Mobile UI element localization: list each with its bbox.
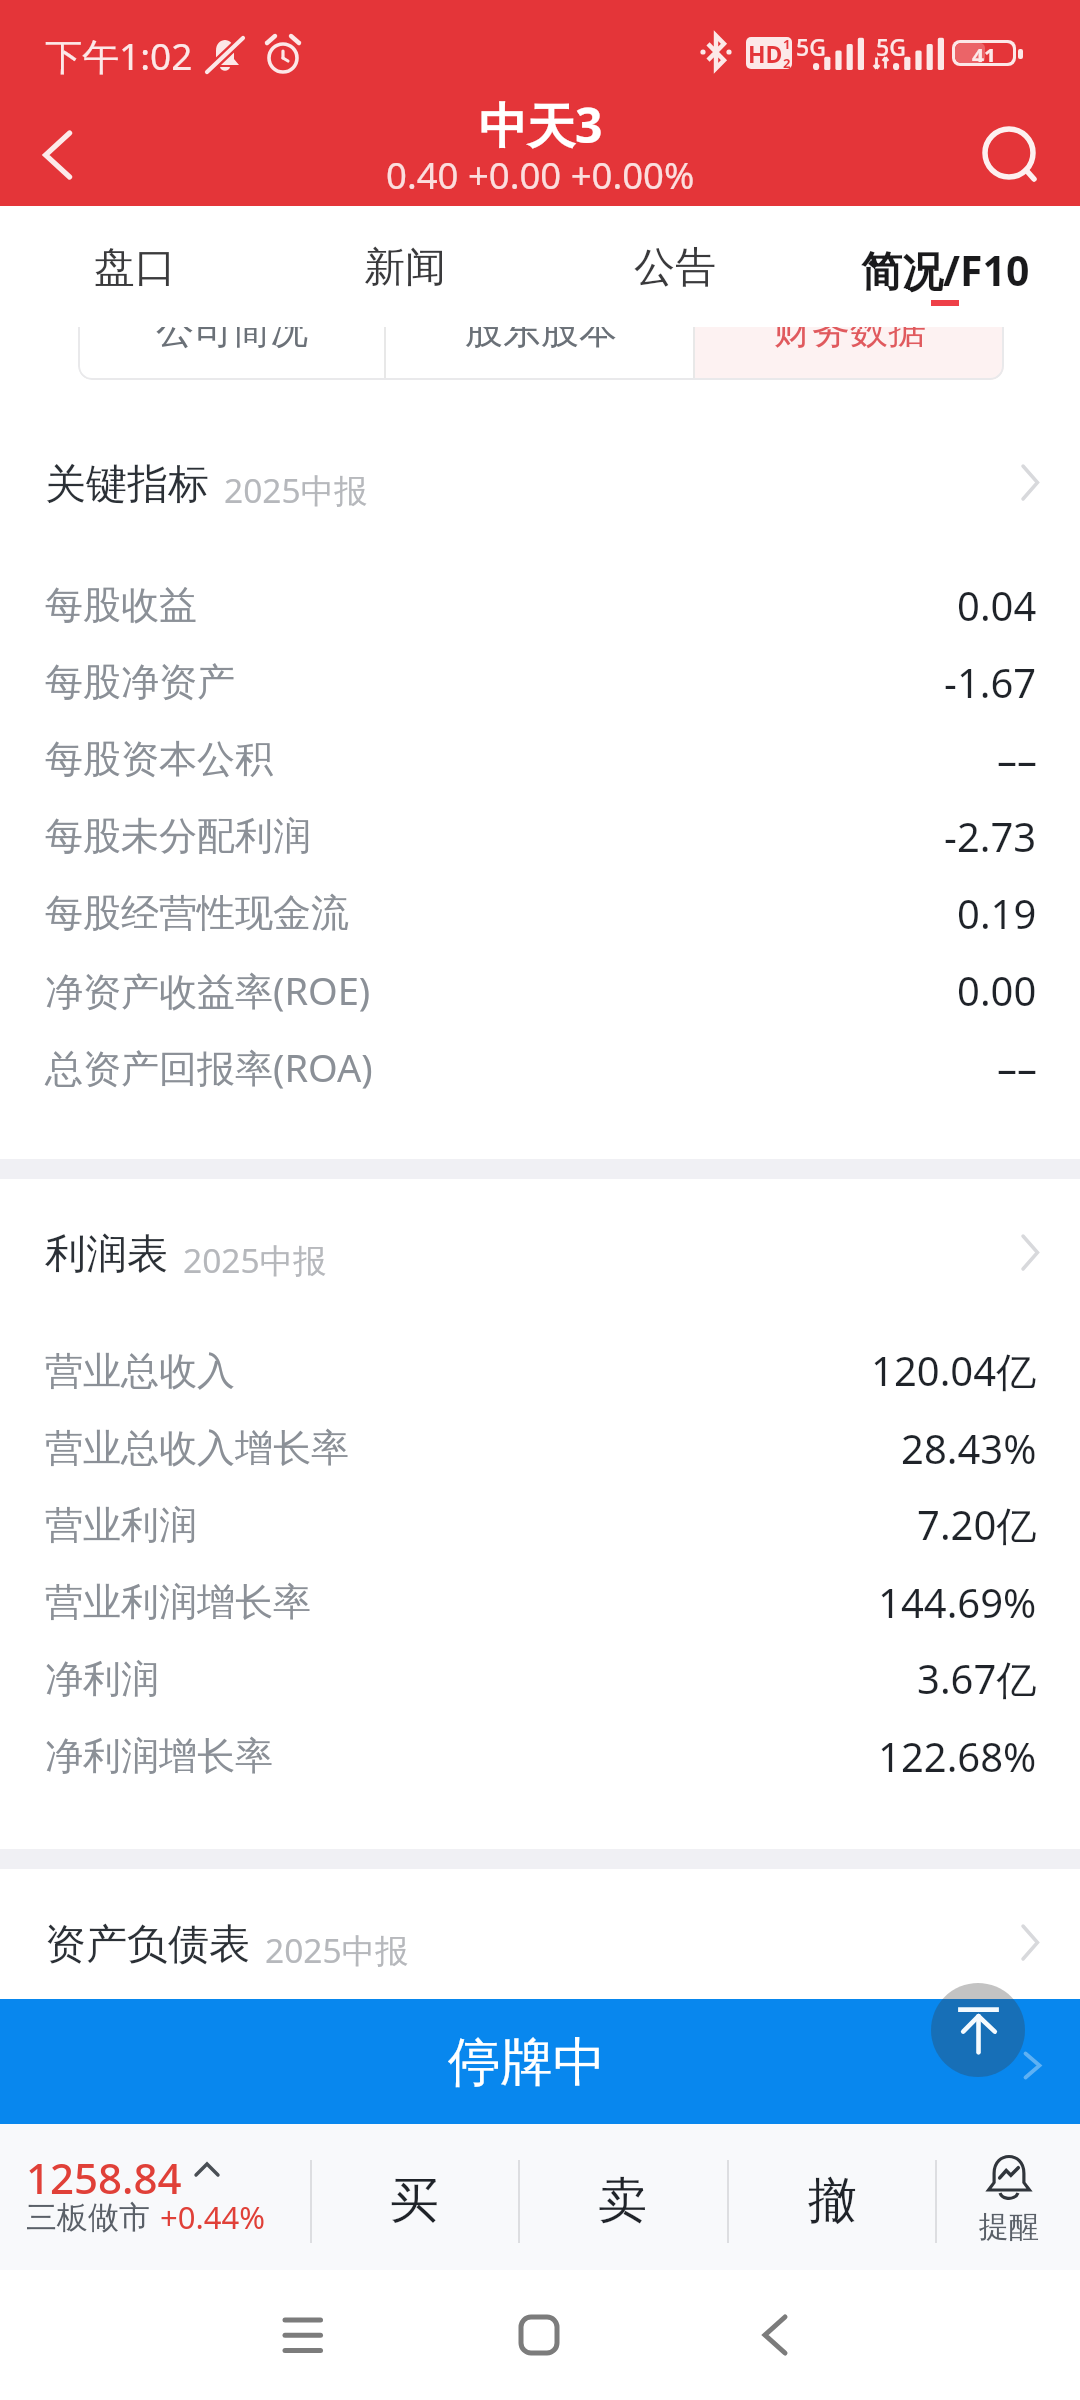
staticText: 三板做市 xyxy=(26,2198,150,2237)
staticText: 净利润增长率 xyxy=(45,1732,273,1780)
button[interactable]: Back xyxy=(736,2300,814,2370)
staticText: 3.67亿 xyxy=(917,1651,1037,1706)
staticText: 5G xyxy=(796,31,826,62)
staticText: 120.04亿 xyxy=(871,1343,1037,1398)
staticText: 1 xyxy=(783,37,791,53)
button[interactable]: 停牌中 xyxy=(0,1999,1080,2124)
button[interactable]: Scroll to top xyxy=(931,1983,1025,2077)
staticText: -1.67 xyxy=(944,655,1037,709)
staticText: 买 xyxy=(390,2170,439,2232)
staticText: 营业总收入 xyxy=(45,1347,235,1395)
staticText: 7.20亿 xyxy=(917,1497,1037,1552)
staticText: 卖 xyxy=(598,2170,647,2232)
staticText: –– xyxy=(997,732,1037,786)
staticText: 股东股本 xyxy=(465,306,617,354)
staticText: 关键指标 xyxy=(45,459,209,511)
staticText: 144.69% xyxy=(878,1575,1037,1629)
staticText: -2.73 xyxy=(944,809,1037,863)
staticText: 每股未分配利润 xyxy=(45,812,311,860)
staticText: 0.00 xyxy=(957,963,1037,1017)
staticText: 简况/F10 xyxy=(861,242,1030,298)
button[interactable]: 股东股本 xyxy=(386,279,695,380)
button[interactable]: 简况/F10 xyxy=(810,206,1080,328)
staticText: 中天3 xyxy=(479,92,603,158)
staticText: 41 xyxy=(972,43,997,62)
staticText: 每股经营性现金流 xyxy=(45,889,349,937)
staticText: 0.04 xyxy=(957,578,1037,632)
button[interactable]: 盘口 xyxy=(0,206,270,328)
button[interactable]: 新闻 xyxy=(270,206,540,328)
button[interactable]: Search xyxy=(968,122,1050,184)
staticText: 0.19 xyxy=(957,886,1037,940)
staticText: 每股收益 xyxy=(45,581,197,629)
button[interactable]: 提醒 xyxy=(937,2150,1080,2262)
button[interactable]: 财务数据 xyxy=(695,279,1004,380)
staticText: 停牌中 xyxy=(448,2029,606,2095)
staticText: 营业利润 xyxy=(45,1501,197,1549)
staticText: 总资产回报率(ROA) xyxy=(45,1041,373,1093)
staticText: +0.44% xyxy=(160,2196,265,2238)
button[interactable]: 利润表 xyxy=(0,1227,1080,1283)
staticText: 1258.84 xyxy=(26,2149,182,2206)
staticText: 公告 xyxy=(634,242,716,294)
button[interactable]: 公司简况 xyxy=(78,279,386,380)
staticText: 营业总收入增长率 xyxy=(45,1424,349,1472)
staticText: 财务数据 xyxy=(774,306,926,354)
staticText: 资产负债表 xyxy=(45,1919,250,1971)
staticText: 每股资本公积 xyxy=(45,735,273,783)
staticText: 净利润 xyxy=(45,1655,159,1703)
staticText: 2 xyxy=(783,54,791,68)
staticText: 2025中报 xyxy=(183,1237,327,1283)
button[interactable]: 公告 xyxy=(540,206,810,328)
button[interactable]: 卖 xyxy=(532,2144,712,2258)
button[interactable]: 买 xyxy=(324,2144,504,2258)
button[interactable]: Home xyxy=(500,2300,578,2370)
staticText: 每股净资产 xyxy=(45,658,235,706)
staticText: 利润表 xyxy=(45,1229,168,1281)
button[interactable]: 撤 xyxy=(742,2144,922,2258)
staticText: HD xyxy=(748,38,783,69)
staticText: 28.43% xyxy=(901,1421,1037,1475)
staticText: 撤 xyxy=(808,2170,857,2232)
staticText: 5G xyxy=(876,31,906,62)
staticText: 2025中报 xyxy=(224,467,368,513)
button[interactable]: 资产负债表 xyxy=(0,1917,1080,1973)
button[interactable]: Back xyxy=(26,124,88,186)
staticText: 下午1:02 xyxy=(45,30,193,81)
staticText: 提醒 xyxy=(979,2208,1039,2246)
button[interactable]: 关键指标 xyxy=(0,457,1080,513)
staticText: 2025中报 xyxy=(265,1927,409,1973)
staticText: 新闻 xyxy=(364,242,446,294)
staticText: 盘口 xyxy=(94,242,176,294)
staticText: 122.68% xyxy=(878,1729,1037,1783)
button[interactable]: Recent apps xyxy=(264,2300,342,2370)
staticText: 公司简况 xyxy=(156,306,308,354)
staticText: 净资产收益率(ROE) xyxy=(45,964,371,1016)
staticText: –– xyxy=(997,1040,1037,1094)
staticText: 营业利润增长率 xyxy=(45,1578,311,1626)
staticText: 0.40 +0.00 +0.00% xyxy=(386,150,695,200)
